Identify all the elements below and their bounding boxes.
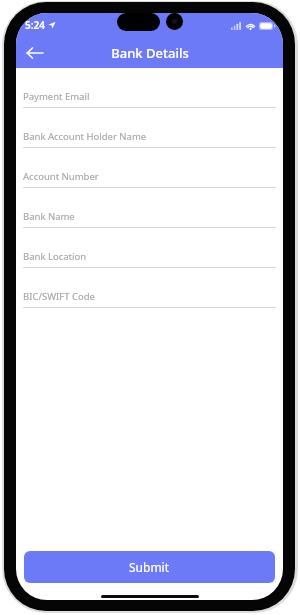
button[interactable]: Bank Name <box>23 188 276 228</box>
button[interactable]: Back <box>20 39 48 67</box>
staticText: Bank Account Holder Name <box>23 130 147 143</box>
button[interactable]: Account Number <box>23 148 276 188</box>
staticText: 5:24 <box>25 18 45 32</box>
staticText: Payment Email <box>23 90 90 103</box>
staticText: Submit <box>129 559 170 575</box>
staticText: Bank Details <box>111 44 189 62</box>
button[interactable]: BIC/SWIFT Code <box>23 268 276 308</box>
staticText: Bank Name <box>23 210 75 223</box>
button[interactable]: Bank Location <box>23 228 276 268</box>
button[interactable]: Bank Account Holder Name <box>23 108 276 148</box>
staticText: Account Number <box>23 170 99 183</box>
staticText: Bank Location <box>23 250 87 263</box>
button[interactable]: Payment Email <box>23 68 276 108</box>
staticText: BIC/SWIFT Code <box>23 290 95 303</box>
button[interactable]: Submit <box>24 551 275 583</box>
